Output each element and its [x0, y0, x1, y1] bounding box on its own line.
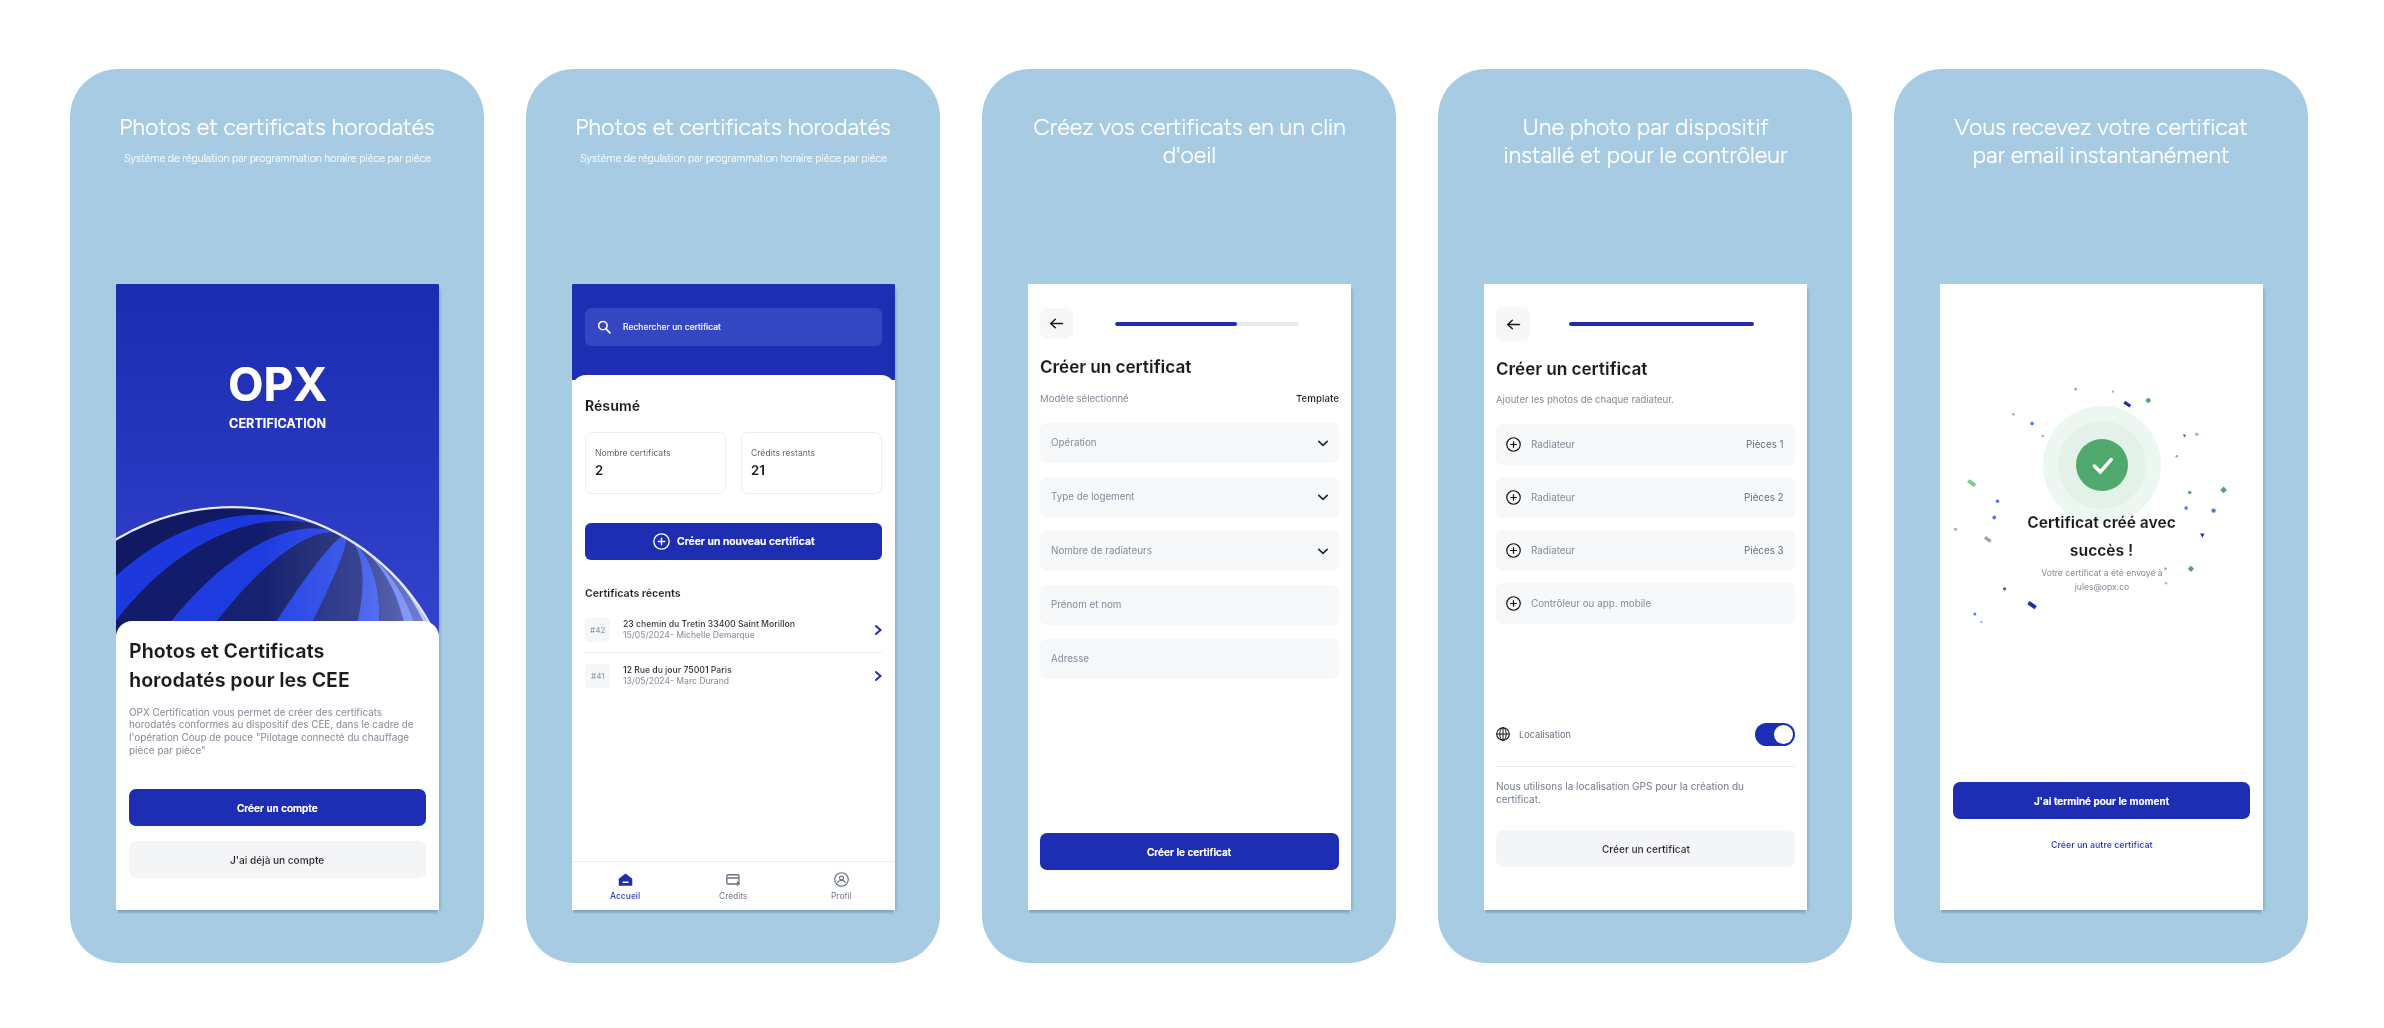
- button[interactable]: J'ai terminé pour le moment: [1953, 782, 2250, 819]
- button[interactable]: Radiateur: [1496, 477, 1795, 518]
- staticText: Photos et certificats horodatés: [119, 113, 435, 141]
- staticText: Localisation: [1519, 729, 1571, 740]
- staticText: 2: [595, 462, 604, 478]
- staticText: Créer un certificat: [1602, 843, 1690, 855]
- button[interactable]: Créer un autre certificat: [1953, 835, 2250, 853]
- staticText: Rechercher un certificat: [623, 322, 721, 332]
- staticText: Opération: [1051, 437, 1097, 449]
- staticText: J'ai déjà un compte: [230, 854, 325, 866]
- staticText: Modèle sélectionné: [1040, 393, 1129, 405]
- button[interactable]: Radiateur: [1496, 424, 1795, 465]
- staticText: Créer un autre certificat: [2051, 839, 2153, 850]
- staticText: 15/05/2024- Michelle Demarque: [623, 630, 755, 640]
- button[interactable]: Créer un nouveau certificat: [585, 523, 882, 560]
- staticText: OPX Certification vous permet de créer d…: [129, 706, 426, 757]
- button[interactable]: #42: [572, 607, 895, 652]
- staticText: Nous utilisons la localisation GPS pour …: [1496, 780, 1744, 806]
- button[interactable]: Créer un certificat: [1496, 830, 1795, 867]
- staticText: Radiateur: [1531, 439, 1575, 451]
- staticText: Une photo par dispositif installé et pou…: [1503, 113, 1788, 169]
- staticText: Contrôleur ou app. mobile: [1531, 598, 1652, 610]
- staticText: Système de régulation par programmation …: [124, 152, 431, 165]
- staticText: Pièces 2: [1744, 492, 1784, 504]
- button[interactable]: Retour: [1040, 308, 1073, 339]
- staticText: CERTIFICATION: [229, 416, 327, 431]
- staticText: Certificats récents: [585, 587, 681, 600]
- button[interactable]: Radiateur: [1496, 530, 1795, 571]
- button[interactable]: Localisation: [1496, 722, 1795, 746]
- staticText: Créer le certificat: [1147, 846, 1232, 858]
- staticText: Créer un certificat: [1040, 357, 1192, 378]
- button[interactable]: Adresse: [1040, 639, 1339, 679]
- staticText: Prénom et nom: [1051, 599, 1122, 611]
- button[interactable]: Crédits: [679, 862, 787, 910]
- staticText: Créez vos certificats en un clin d'oeil: [1033, 113, 1346, 169]
- staticText: 13/05/2024- Marc Durand: [623, 676, 730, 686]
- staticText: 21: [751, 462, 765, 478]
- button[interactable]: Prénom et nom: [1040, 585, 1339, 625]
- staticText: J'ai terminé pour le moment: [2034, 795, 2170, 807]
- staticText: Crédits: [719, 891, 748, 901]
- staticText: Système de régulation par programmation …: [580, 152, 887, 165]
- button[interactable]: J'ai déjà un compte: [129, 841, 426, 878]
- button[interactable]: Accueil: [572, 862, 679, 910]
- button[interactable]: Opération: [1040, 423, 1339, 463]
- staticText: Votre certificat a été envoyé à jules@op…: [2041, 568, 2163, 592]
- button[interactable]: Créer le certificat: [1040, 833, 1339, 870]
- staticText: Template: [1296, 393, 1339, 405]
- staticText: Vous recevez votre certificat par email …: [1954, 113, 2248, 169]
- staticText: 23 chemin du Tretin 33400 Saint Morillon: [623, 619, 796, 629]
- button[interactable]: #41: [572, 653, 895, 698]
- button[interactable]: Créer un compte: [129, 789, 426, 826]
- button[interactable]: Contrôleur ou app. mobile: [1496, 583, 1795, 624]
- staticText: Adresse: [1051, 653, 1090, 665]
- staticText: Résumé: [585, 397, 641, 414]
- staticText: Créer un nouveau certificat: [677, 535, 815, 548]
- staticText: Radiateur: [1531, 492, 1575, 504]
- button[interactable]: Type de logement: [1040, 477, 1339, 517]
- staticText: Radiateur: [1531, 545, 1575, 557]
- staticText: Nombre de radiateurs: [1051, 545, 1152, 557]
- staticText: Ajouter les photos de chaque radiateur.: [1496, 394, 1675, 406]
- staticText: Nombre certificats: [595, 448, 671, 458]
- button[interactable]: Nombre de radiateurs: [1040, 531, 1339, 571]
- staticText: Photos et certificats horodatés: [575, 113, 891, 141]
- staticText: #41: [591, 671, 605, 681]
- staticText: 12 Rue du jour 75001 Paris: [623, 665, 732, 675]
- button[interactable]: Retour: [1496, 307, 1530, 341]
- staticText: Profil: [831, 891, 852, 901]
- staticText: Certificat créé avec succès !: [2027, 513, 2176, 560]
- staticText: Photos et Certificats horodatés pour les…: [129, 639, 350, 692]
- staticText: Crédits restants: [751, 448, 816, 458]
- staticText: Pièces 1: [1746, 439, 1784, 451]
- staticText: Créer un certificat: [1496, 359, 1648, 380]
- staticText: #42: [590, 625, 606, 635]
- staticText: Pièces 3: [1744, 545, 1784, 557]
- staticText: Créer un compte: [237, 802, 318, 814]
- staticText: OPX: [228, 356, 328, 412]
- button[interactable]: Rechercher un certificat: [585, 308, 882, 346]
- staticText: Type de logement: [1051, 491, 1135, 503]
- button[interactable]: Profil: [787, 862, 895, 910]
- staticText: Accueil: [610, 891, 641, 901]
